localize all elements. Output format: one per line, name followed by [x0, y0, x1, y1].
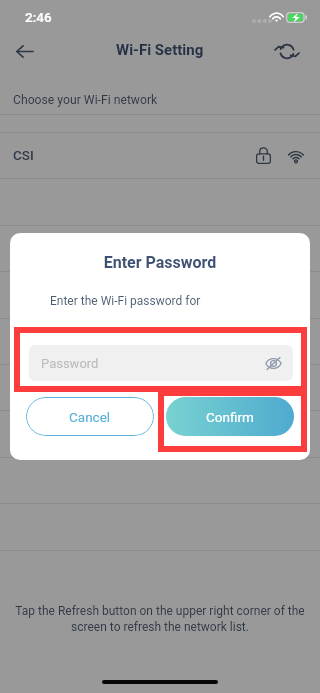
button[interactable] — [0, 318, 320, 364]
button[interactable] — [0, 271, 320, 317]
button[interactable] — [0, 457, 320, 503]
button[interactable]: Confirm — [166, 397, 294, 436]
button[interactable]: Password — [29, 345, 293, 381]
staticText: Cancel — [69, 409, 111, 425]
staticText: Enter the Wi-Fi password for — [50, 294, 201, 308]
button[interactable] — [0, 410, 320, 456]
staticText: Confirm — [206, 409, 254, 425]
staticText: Password — [41, 356, 99, 371]
button[interactable]: Cancel — [26, 397, 154, 436]
staticText: 2:46 — [25, 9, 52, 25]
button[interactable]: Back — [3, 31, 47, 73]
button[interactable]: CSI — [0, 132, 320, 178]
staticText: Enter Password — [10, 253, 310, 272]
button[interactable]: Refresh — [265, 31, 309, 73]
button[interactable]: Show password — [261, 351, 285, 375]
button[interactable] — [0, 364, 320, 410]
staticText: Wi-Fi Setting — [116, 41, 204, 59]
staticText: Choose your Wi-Fi network — [13, 93, 158, 107]
button[interactable] — [0, 225, 320, 271]
staticText: CSI — [13, 147, 34, 163]
staticText: Tap the Refresh button on the upper righ… — [4, 604, 316, 634]
